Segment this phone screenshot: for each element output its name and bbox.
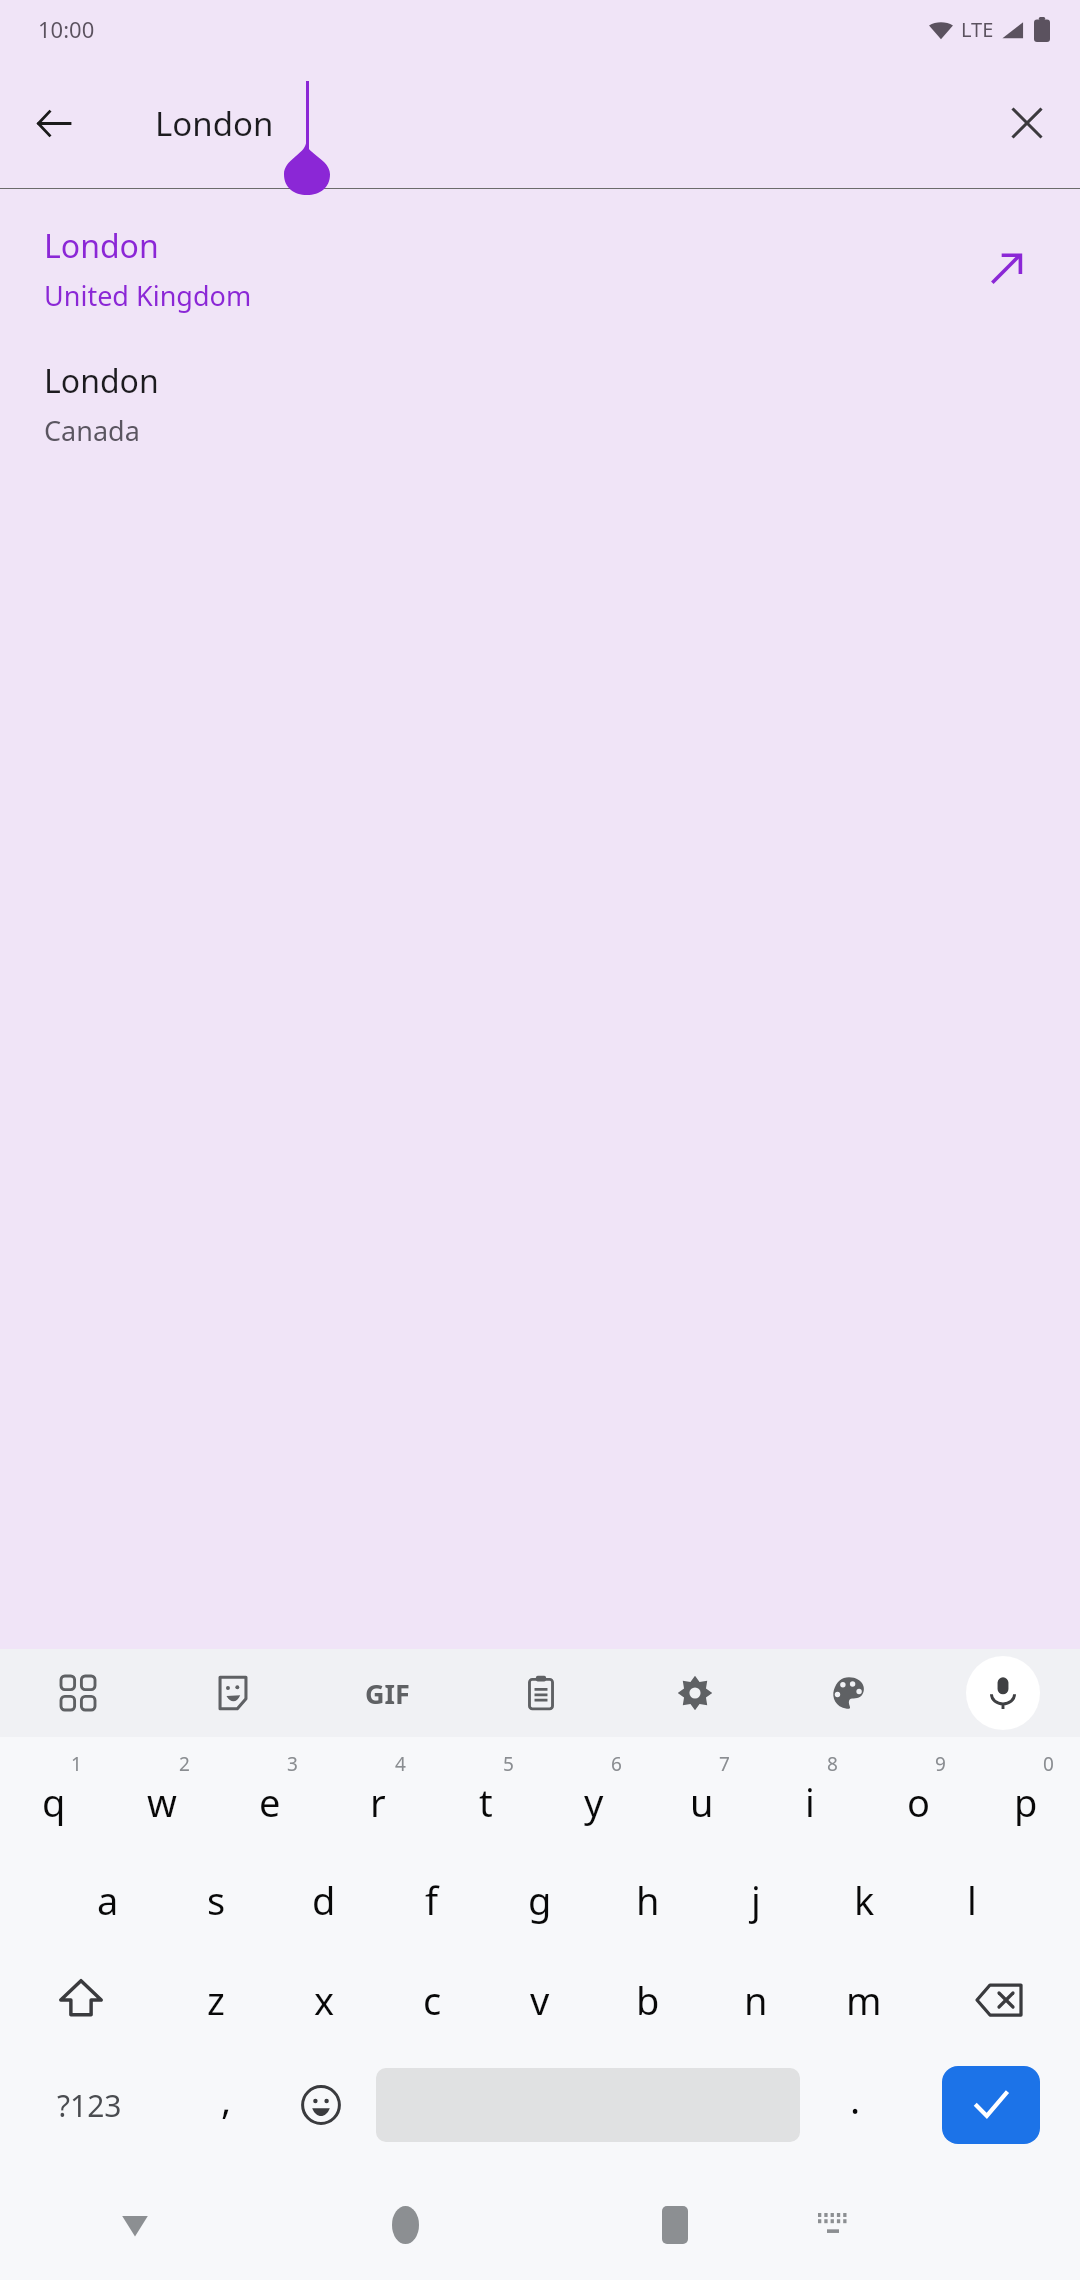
staticText: LTE <box>961 16 994 43</box>
staticText: o <box>907 1776 930 1828</box>
staticText: m <box>846 1974 882 2026</box>
button[interactable]: h <box>594 1850 702 1950</box>
button[interactable]: GIF <box>350 1656 424 1730</box>
button[interactable]: London <box>0 346 1080 461</box>
button[interactable]: q <box>0 1745 108 1850</box>
staticText: f <box>425 1874 439 1926</box>
button[interactable]: w <box>108 1745 216 1850</box>
staticText: 2 <box>179 1751 190 1777</box>
button[interactable]: k <box>810 1850 918 1950</box>
button[interactable]: Back <box>20 90 86 156</box>
button[interactable]: Use this suggestion <box>976 239 1036 299</box>
button[interactable]: d <box>270 1850 378 1950</box>
button[interactable]: v <box>486 1950 594 2050</box>
staticText: 6 <box>611 1751 622 1777</box>
button[interactable]: u <box>648 1745 756 1850</box>
button[interactable]: Toolbox <box>41 1656 115 1730</box>
staticText: u <box>690 1776 714 1828</box>
button[interactable]: Theme <box>812 1656 886 1730</box>
button[interactable]: London <box>0 211 1080 326</box>
staticText: . <box>850 2073 861 2125</box>
button[interactable]: z <box>162 1950 270 2050</box>
button[interactable]: x <box>270 1950 378 2050</box>
staticText: London <box>44 359 159 403</box>
staticText: 9 <box>935 1751 946 1777</box>
staticText: 0 <box>1043 1751 1054 1777</box>
staticText: w <box>147 1776 177 1828</box>
staticText: e <box>259 1776 281 1828</box>
staticText: a <box>97 1874 119 1926</box>
staticText: s <box>207 1874 226 1926</box>
staticText: 4 <box>395 1751 406 1777</box>
staticText: 5 <box>503 1751 514 1777</box>
staticText: 3 <box>287 1751 298 1777</box>
staticText: q <box>42 1776 66 1828</box>
button[interactable]: Backspace <box>918 1950 1080 2050</box>
button[interactable]: c <box>378 1950 486 2050</box>
button[interactable]: Voice input <box>966 1656 1040 1730</box>
staticText: , <box>221 2073 232 2125</box>
staticText: j <box>751 1874 761 1926</box>
button[interactable]: Clear <box>994 90 1060 156</box>
button[interactable]: o <box>864 1745 972 1850</box>
staticText: y <box>584 1776 604 1828</box>
button[interactable]: b <box>594 1950 702 2050</box>
staticText: d <box>312 1874 336 1926</box>
staticText: 8 <box>827 1751 838 1777</box>
staticText: r <box>370 1776 386 1828</box>
staticText: p <box>1014 1776 1038 1828</box>
staticText: London <box>155 101 274 146</box>
staticText: United Kingdom <box>44 277 252 314</box>
button[interactable]: t <box>432 1745 540 1850</box>
staticText: g <box>528 1874 552 1926</box>
button[interactable]: j <box>702 1850 810 1950</box>
button[interactable]: a <box>54 1850 162 1950</box>
button[interactable]: ?123 <box>0 2050 179 2160</box>
staticText: k <box>854 1874 875 1926</box>
staticText: t <box>479 1776 493 1828</box>
button[interactable]: Emoji <box>274 2050 368 2160</box>
button[interactable]: p <box>972 1745 1080 1850</box>
staticText: ?123 <box>57 2085 122 2126</box>
staticText: x <box>314 1974 335 2026</box>
staticText: c <box>423 1974 442 2026</box>
button[interactable]: e <box>216 1745 324 1850</box>
staticText: 1 <box>71 1751 82 1777</box>
button[interactable]: m <box>810 1950 918 2050</box>
button[interactable]: Stickers <box>196 1656 270 1730</box>
staticText: n <box>744 1974 768 2026</box>
staticText: l <box>967 1874 977 1926</box>
button[interactable]: Back <box>0 2170 270 2280</box>
staticText: 7 <box>719 1751 730 1777</box>
button[interactable]: Done <box>942 2066 1040 2144</box>
button[interactable]: . <box>808 2050 902 2160</box>
button[interactable]: Home <box>270 2170 540 2280</box>
button[interactable]: r <box>324 1745 432 1850</box>
button[interactable]: Switch keyboard <box>810 2170 1080 2280</box>
staticText: Canada <box>44 412 140 449</box>
button[interactable]: y <box>540 1745 648 1850</box>
staticText: b <box>636 1974 660 2026</box>
button[interactable]: Clipboard <box>504 1656 578 1730</box>
button[interactable]: l <box>918 1850 1026 1950</box>
staticText: London <box>44 224 159 268</box>
staticText: i <box>805 1776 815 1828</box>
staticText: z <box>207 1974 225 2026</box>
button[interactable]: f <box>378 1850 486 1950</box>
staticText: v <box>530 1974 550 2026</box>
button[interactable]: g <box>486 1850 594 1950</box>
button[interactable]: , <box>179 2050 274 2160</box>
button[interactable]: Shift <box>0 1950 162 2050</box>
button[interactable]: Recents <box>540 2170 810 2280</box>
staticText: h <box>636 1874 660 1926</box>
button[interactable]: Settings <box>658 1656 732 1730</box>
button[interactable]: n <box>702 1950 810 2050</box>
button[interactable]: i <box>756 1745 864 1850</box>
staticText: GIF <box>365 1675 410 1712</box>
staticText: 10:00 <box>38 14 95 44</box>
button[interactable]: s <box>162 1850 270 1950</box>
